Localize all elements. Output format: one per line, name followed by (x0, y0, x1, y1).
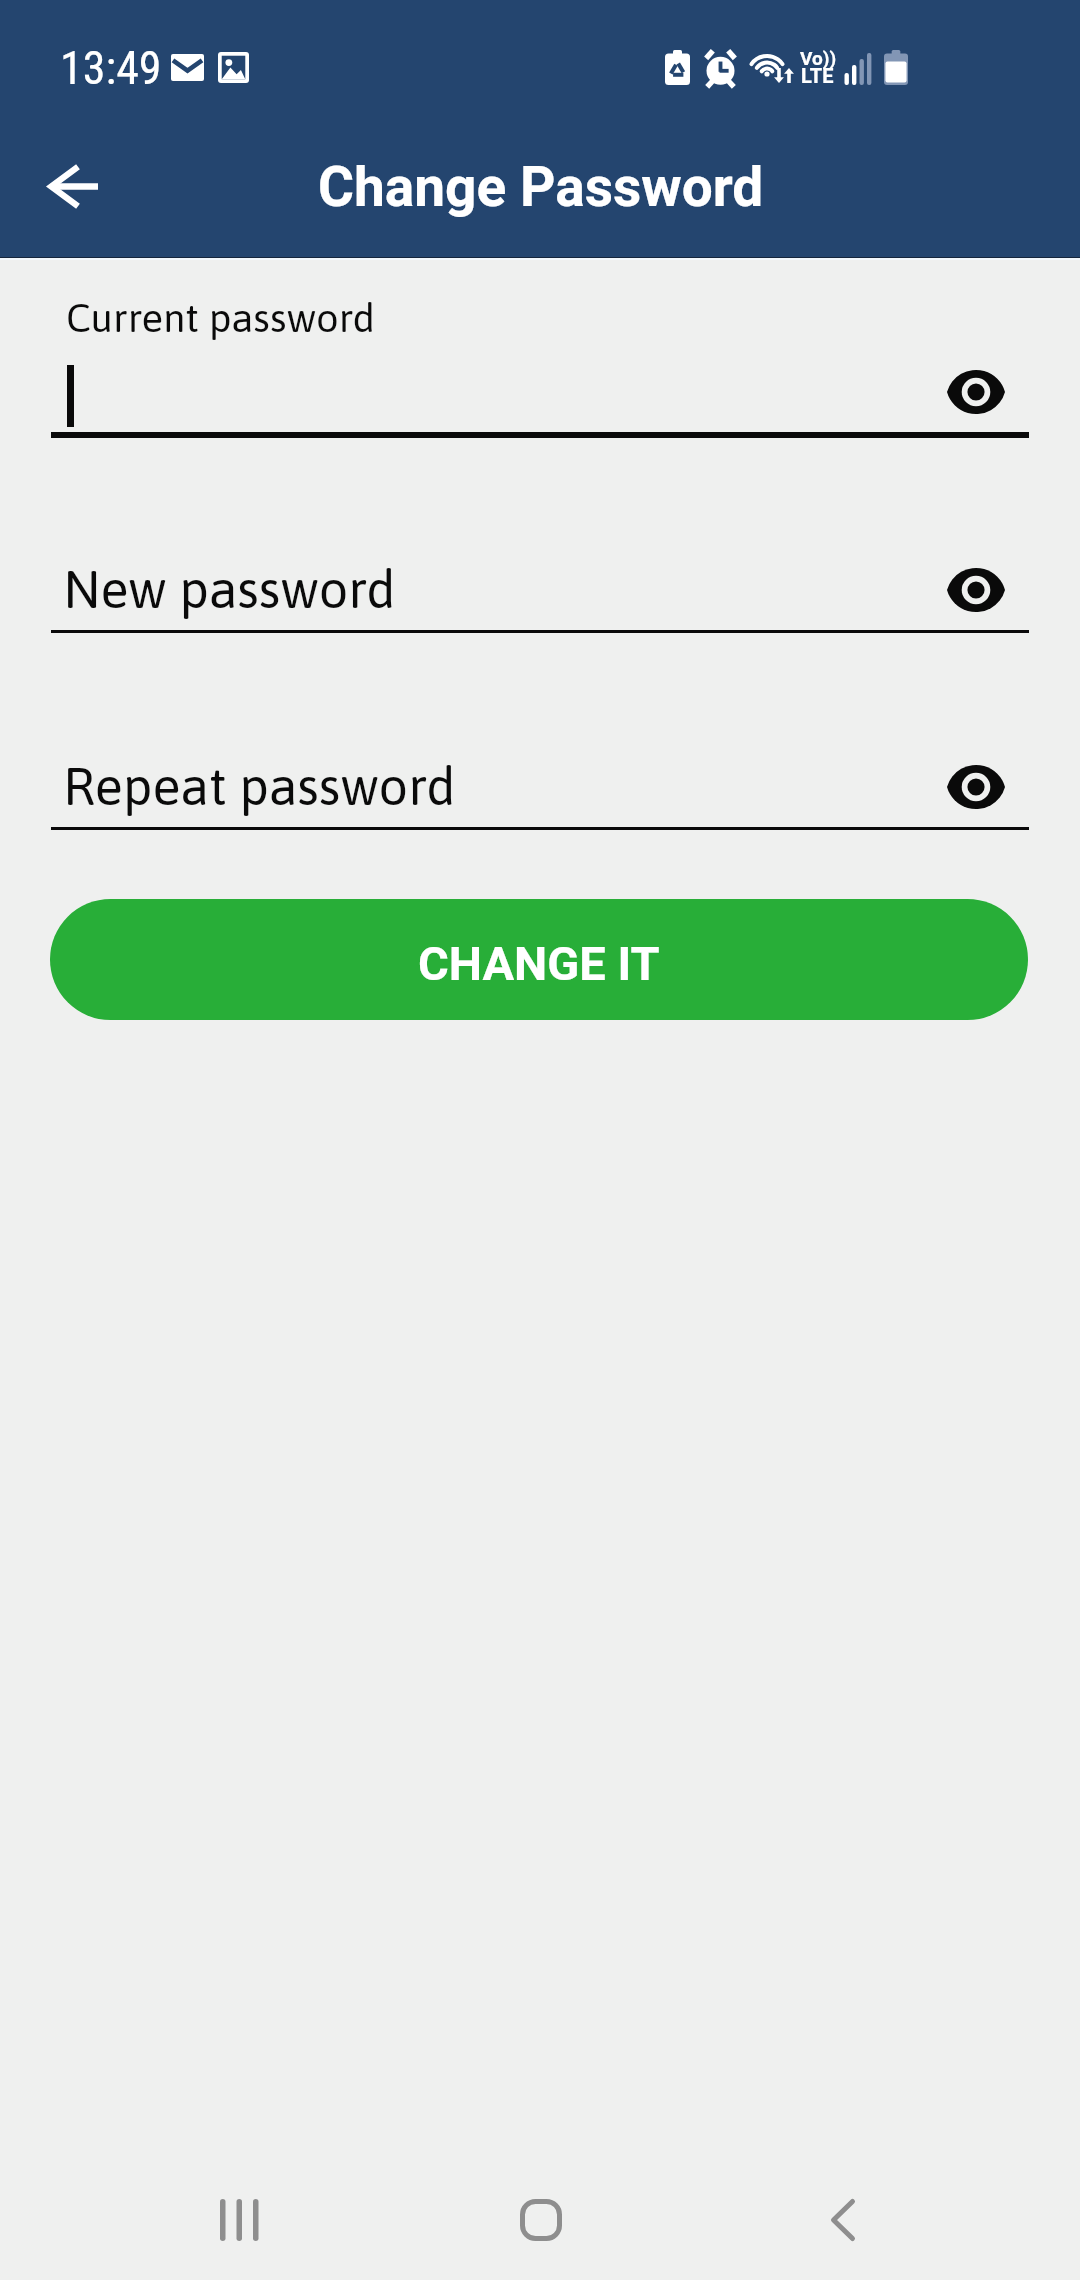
staticText: Current password (66, 295, 376, 341)
button[interactable]: Home (481, 2170, 601, 2270)
button[interactable]: Show repeated password (926, 743, 1026, 831)
button[interactable]: CHANGE IT (50, 899, 1028, 1020)
staticText: CHANGE IT (418, 936, 660, 991)
staticText: New password (63, 559, 396, 619)
button[interactable]: Show current password (926, 348, 1026, 436)
staticText: Change Password (318, 155, 764, 219)
staticText: Vo)) (800, 47, 837, 69)
button[interactable]: Navigate up (29, 142, 117, 230)
staticText: 13:49 (60, 41, 162, 95)
button[interactable]: Back (783, 2170, 903, 2270)
staticText: LTE (801, 64, 834, 87)
button[interactable]: Recent apps (179, 2170, 299, 2270)
button[interactable]: Show new password (926, 546, 1026, 634)
staticText: Repeat password (63, 756, 456, 816)
